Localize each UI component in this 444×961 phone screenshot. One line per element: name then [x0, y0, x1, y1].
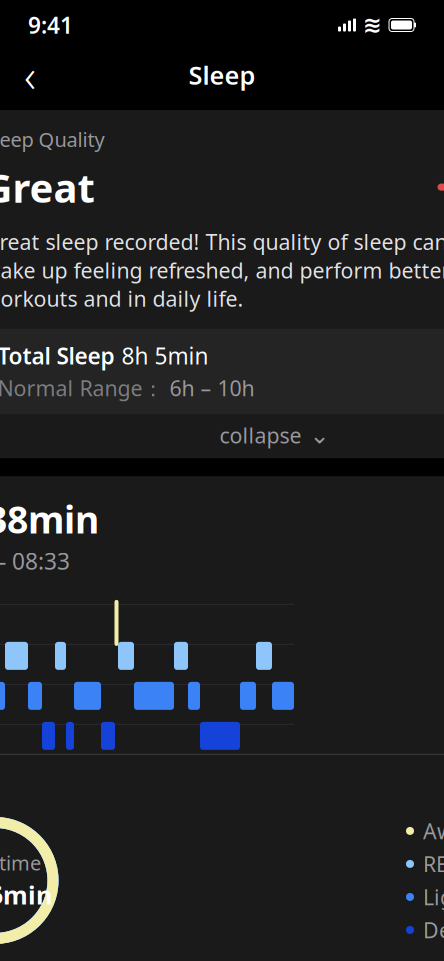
staticText: 7h 45min: [0, 878, 52, 911]
staticText: Total time: [0, 849, 41, 876]
staticText: collapse: [219, 421, 301, 449]
staticText: REM: [423, 850, 444, 878]
staticText: Sleep Quality: [0, 126, 104, 153]
staticText: Great: [0, 161, 94, 214]
staticText: ≋: [363, 12, 382, 38]
button[interactable]: collapse: [0, 418, 444, 452]
staticText: 6h – 10h: [169, 374, 254, 402]
staticText: Deep: [423, 916, 444, 944]
staticText: 8h 5min: [121, 341, 208, 371]
staticText: Awake: [423, 817, 444, 845]
staticText: ‹: [24, 45, 36, 105]
staticText: 00:48 – 08:33: [0, 546, 70, 576]
staticText: Great sleep recorded! This quality of sl…: [0, 228, 444, 313]
staticText: Light: [423, 883, 444, 911]
button[interactable]: Back: [8, 53, 52, 97]
staticText: 7h 38min: [0, 494, 99, 544]
staticText: 9:41: [28, 10, 73, 40]
staticText: ⌄: [309, 422, 329, 449]
staticText: Total Sleep: [0, 341, 114, 371]
staticText: Normal Range：: [0, 374, 163, 402]
staticText: Sleep: [188, 58, 255, 92]
